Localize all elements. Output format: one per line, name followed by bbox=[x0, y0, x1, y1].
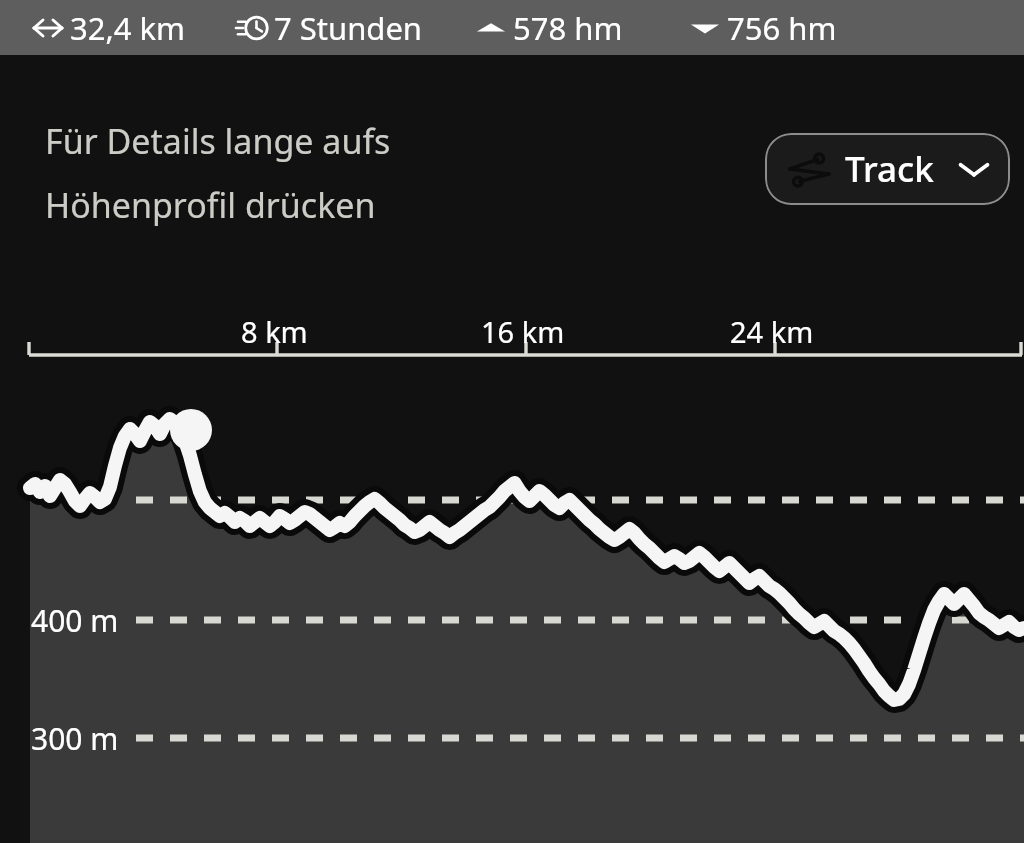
staticText: 400 m bbox=[31, 600, 119, 641]
staticText: 8 km bbox=[241, 312, 308, 351]
staticText: Für Details lange aufs bbox=[45, 118, 391, 164]
staticText: 16 km bbox=[481, 312, 565, 351]
other: Expand track options bbox=[958, 157, 990, 181]
staticText: 578 hm bbox=[513, 7, 623, 49]
staticText: 7 Stunden bbox=[274, 7, 423, 49]
staticText: 32,4 km bbox=[70, 7, 186, 49]
button[interactable] bbox=[0, 0, 1024, 843]
staticText: 756 hm bbox=[727, 7, 837, 49]
staticText: Höhenprofil drücken bbox=[45, 182, 376, 228]
staticText: 300 m bbox=[31, 718, 119, 759]
staticText: 24 km bbox=[730, 312, 814, 351]
button[interactable]: Track bbox=[765, 133, 1010, 205]
staticText: Track bbox=[845, 145, 934, 193]
